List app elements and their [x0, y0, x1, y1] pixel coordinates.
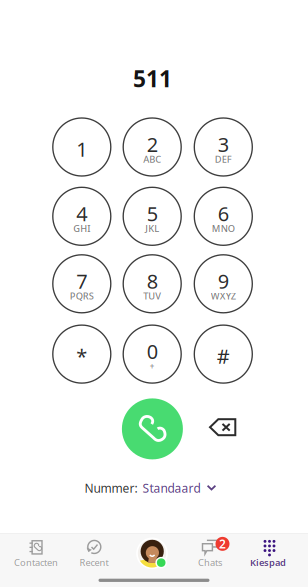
staticText: 6	[218, 200, 229, 227]
staticText: +	[150, 361, 155, 372]
button[interactable]: 1	[53, 118, 111, 176]
button[interactable]: Contacten	[7, 534, 65, 573]
button[interactable]: 8	[123, 255, 181, 313]
button[interactable]: *	[53, 325, 111, 383]
staticText: 5	[147, 200, 158, 227]
button[interactable]: Kiespad	[239, 534, 297, 573]
staticText: WXYZ	[211, 290, 236, 302]
button[interactable]: 6	[194, 187, 252, 245]
button[interactable]: 5	[123, 187, 181, 245]
staticText: Kiespad	[250, 556, 286, 569]
staticText: GHI	[73, 222, 90, 235]
button[interactable]: 4	[53, 187, 111, 245]
staticText: 2	[219, 536, 226, 552]
button[interactable]: Profile	[123, 534, 181, 573]
button[interactable]: Chats	[181, 534, 239, 573]
staticText: ABC	[143, 153, 161, 165]
staticText: PQRS	[70, 290, 94, 302]
staticText: JKL	[145, 222, 159, 235]
staticText: Nummer:	[85, 480, 138, 496]
staticText: 4	[76, 200, 87, 227]
staticText: Standaard	[143, 480, 201, 496]
staticText: 511	[133, 63, 172, 93]
staticText: 3	[218, 131, 229, 157]
button[interactable]: 3	[194, 118, 252, 176]
staticText: Chats	[198, 556, 222, 569]
button[interactable]: 7	[53, 255, 111, 313]
button[interactable]: Delete	[197, 405, 247, 449]
staticText: TUV	[143, 290, 161, 302]
staticText: 1	[76, 136, 87, 162]
staticText: MNO	[212, 222, 235, 235]
staticText: 8	[147, 268, 158, 294]
button[interactable]: 9	[194, 255, 252, 313]
staticText: #	[217, 343, 230, 369]
staticText: Recent	[79, 556, 108, 569]
button[interactable]: #	[194, 325, 252, 383]
staticText: 7	[76, 268, 87, 294]
staticText: *	[76, 343, 87, 369]
staticText: 0	[147, 338, 158, 365]
button[interactable]: Recent	[65, 534, 123, 573]
button[interactable]: 2	[123, 118, 181, 176]
staticText: Contacten	[14, 556, 58, 569]
staticText: 9	[218, 268, 229, 294]
staticText: 2	[147, 131, 158, 157]
button[interactable]: 0	[123, 325, 181, 383]
button[interactable]: Nummer:	[85, 478, 217, 498]
staticText: DEF	[215, 153, 232, 165]
button[interactable]: Call	[122, 398, 183, 459]
